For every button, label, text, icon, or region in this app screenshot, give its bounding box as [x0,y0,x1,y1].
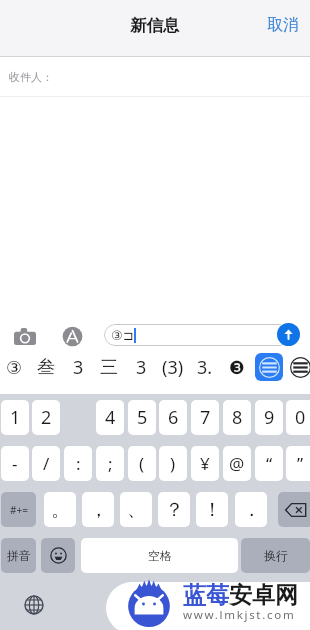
staticText: ) [170,452,176,475]
staticText: 三 [100,356,118,379]
button[interactable]: - [1,446,29,481]
button[interactable]: 5 [128,400,156,435]
staticText: ． [242,498,261,522]
staticText: ¥ [200,452,210,475]
button[interactable]: Change keyboard [21,592,47,618]
button[interactable]: 3 [62,355,94,379]
button[interactable]: / [32,446,60,481]
button[interactable]: Emoji [41,538,75,573]
button[interactable]: App Store [59,323,85,349]
button[interactable]: 换行 [241,538,310,573]
button[interactable]: ③ [0,355,30,379]
staticText: - [12,452,18,475]
button[interactable]: 收件人： [0,57,310,96]
button[interactable]: ， [82,492,114,527]
button[interactable]: ！ [196,492,228,527]
staticText: 取消 [267,15,299,35]
button[interactable]: Candidate mode [255,353,283,381]
button[interactable]: 0 [286,400,310,435]
staticText: 安卓网 [229,581,298,610]
button[interactable]: (3) [157,355,189,379]
staticText: @ [229,452,245,475]
staticText: 3 [73,355,84,379]
staticText: / [43,452,50,475]
staticText: 新信息 [130,15,180,36]
staticText: 3 [136,355,147,379]
staticText: “ [266,452,273,475]
staticText: 6 [168,405,179,430]
button[interactable]: 取消 [255,9,310,41]
staticText: 拼音 [7,548,31,563]
staticText: 、 [127,498,146,522]
staticText: 空格 [148,548,172,563]
button[interactable]: 7 [191,400,219,435]
button[interactable]: 空格 [81,538,238,573]
staticText: ， [89,498,108,522]
button[interactable]: ) [159,446,187,481]
staticText: 。 [51,498,70,522]
button[interactable]: Symbols [1,492,36,527]
button[interactable]: @ [223,446,251,481]
staticText: #+= [10,503,28,517]
button[interactable]: More options [286,353,310,381]
button[interactable]: 6 [159,400,187,435]
button[interactable]: ． [235,492,267,527]
button[interactable]: ” [286,446,310,481]
staticText: ③ [6,357,23,378]
button[interactable]: Send [277,323,300,346]
button[interactable]: ？ [158,492,190,527]
staticText: 2 [41,405,52,430]
staticText: ❸ [229,357,246,378]
staticText: 收件人： [9,70,53,84]
staticText: : [76,452,81,475]
staticText: ③ [111,328,123,343]
button[interactable]: 、 [120,492,152,527]
button[interactable]: 三 [93,355,125,379]
staticText: ( [139,452,145,475]
staticText: 叁 [37,356,55,379]
button[interactable]: “ [255,446,283,481]
button[interactable]: ③ [104,324,290,346]
button[interactable]: Backspace [278,492,310,527]
staticText: 换行 [264,548,288,563]
button[interactable]: 1 [1,400,29,435]
button[interactable]: ❸ [221,355,253,379]
staticText: 4 [105,405,116,430]
button[interactable]: 4 [96,400,124,435]
staticText: 8 [232,405,243,430]
button[interactable]: 3. [189,355,221,379]
staticText: ⊐ [123,328,134,343]
button[interactable]: Camera [12,323,38,349]
staticText: ” [297,452,304,475]
button[interactable]: 。 [44,492,76,527]
button[interactable]: 9 [255,400,283,435]
button[interactable]: : [64,446,92,481]
staticText: 蓝莓 [183,581,229,610]
staticText: 0 [295,405,306,430]
button[interactable]: 叁 [30,355,62,379]
button[interactable]: 3 [125,355,157,379]
button[interactable]: ¥ [191,446,219,481]
staticText: 3. [197,355,213,379]
staticText: 1 [10,405,21,430]
staticText: 7 [200,405,211,430]
staticText: ; [108,452,113,475]
staticText: ？ [165,498,184,522]
staticText: ！ [203,498,222,522]
staticText: www.lmkjst.com [183,607,296,623]
staticText: (3) [162,355,184,379]
staticText: 9 [264,405,275,430]
button[interactable]: ( [128,446,156,481]
button[interactable]: Pinyin [1,538,36,573]
button[interactable]: ; [96,446,124,481]
button[interactable]: 8 [223,400,251,435]
button[interactable]: 2 [32,400,60,435]
staticText: 5 [137,405,148,430]
